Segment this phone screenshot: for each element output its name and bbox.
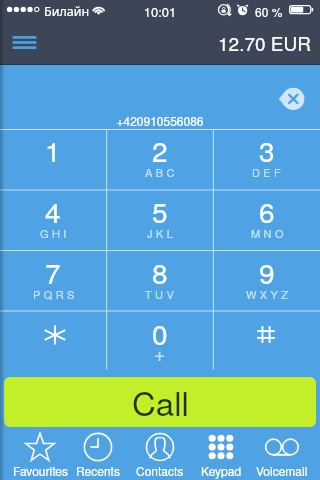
staticText: 2 bbox=[152, 130, 168, 170]
button[interactable]: Voicemail bbox=[250, 430, 314, 480]
staticText: 5 bbox=[152, 191, 168, 231]
button[interactable]: 1 bbox=[0, 130, 106, 191]
staticText: Recents bbox=[76, 462, 120, 479]
button[interactable]: Call bbox=[4, 377, 316, 427]
button[interactable]: 6 bbox=[213, 191, 320, 252]
button[interactable]: Delete bbox=[277, 86, 305, 112]
staticText: DEF bbox=[252, 164, 285, 180]
staticText: GHI bbox=[40, 225, 70, 241]
staticText: JKL bbox=[147, 225, 177, 241]
staticText: + bbox=[154, 339, 166, 366]
staticText: Билайн bbox=[44, 3, 90, 20]
button[interactable] bbox=[0, 313, 106, 374]
staticText: 12.70 EUR bbox=[218, 29, 311, 56]
staticText: MNO bbox=[251, 225, 287, 241]
button[interactable]: 8 bbox=[106, 252, 213, 313]
staticText: +420910556086 bbox=[0, 112, 320, 129]
staticText: Keypad bbox=[201, 462, 242, 479]
button[interactable]: Favourites bbox=[8, 430, 72, 480]
staticText: 7 bbox=[45, 252, 61, 292]
staticText: WXYZ bbox=[246, 286, 292, 302]
staticText: 4 bbox=[45, 191, 61, 231]
button[interactable]: 0 bbox=[106, 313, 213, 374]
staticText: 10:01 bbox=[0, 2, 320, 21]
button[interactable]: 9 bbox=[213, 252, 320, 313]
staticText: 1 bbox=[45, 130, 61, 170]
staticText: PQRS bbox=[33, 286, 78, 302]
button[interactable] bbox=[213, 313, 320, 374]
button[interactable]: 4 bbox=[0, 191, 106, 252]
button[interactable]: Menu bbox=[0, 20, 48, 65]
button[interactable]: 2 bbox=[106, 130, 213, 191]
button[interactable]: 3 bbox=[213, 130, 320, 191]
staticText: TUV bbox=[145, 286, 178, 302]
button[interactable]: Keypad bbox=[189, 430, 253, 480]
staticText: Call bbox=[132, 378, 189, 425]
button[interactable]: 5 bbox=[106, 191, 213, 252]
button[interactable]: Recents bbox=[66, 430, 130, 480]
staticText: 0 bbox=[152, 313, 168, 353]
staticText: 9 bbox=[259, 252, 275, 292]
staticText: 60 % bbox=[255, 3, 283, 20]
staticText: ABC bbox=[145, 164, 178, 180]
staticText: Favourites bbox=[13, 462, 68, 479]
staticText: Voicemail bbox=[256, 462, 308, 479]
button[interactable]: Contacts bbox=[128, 430, 192, 480]
staticText: 6 bbox=[259, 191, 275, 231]
staticText: 8 bbox=[152, 252, 168, 292]
staticText: Contacts bbox=[136, 462, 184, 479]
button[interactable]: 7 bbox=[0, 252, 106, 313]
staticText: 3 bbox=[259, 130, 275, 170]
